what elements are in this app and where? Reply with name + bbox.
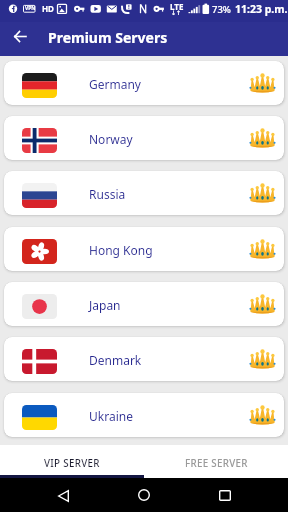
staticText: Hong Kong (89, 242, 153, 258)
button[interactable]: Recent apps (208, 478, 242, 512)
button[interactable]: Germany (4, 61, 284, 105)
staticText: Norway (89, 131, 133, 147)
staticText: LTE (170, 1, 184, 12)
button[interactable]: Navigate up (4, 21, 35, 52)
staticText: FREE SERVER (185, 457, 248, 470)
button[interactable]: Back (46, 479, 80, 512)
staticText: HD (42, 3, 54, 14)
staticText: Ukraine (89, 408, 133, 424)
staticText: VPN (25, 5, 36, 12)
button[interactable]: Ukraine (4, 393, 284, 437)
button[interactable]: Norway (4, 116, 284, 160)
staticText: Premium Servers (48, 28, 168, 47)
button[interactable]: VIP SERVER (0, 445, 144, 478)
button[interactable]: Denmark (4, 337, 284, 381)
staticText: Russia (89, 186, 126, 202)
staticText: ↓↑ (171, 9, 182, 16)
staticText: Denmark (89, 352, 142, 368)
button[interactable]: Hong Kong (4, 227, 284, 271)
staticText: Japan (89, 297, 121, 313)
staticText: Germany (89, 76, 141, 92)
button[interactable]: Home (127, 478, 161, 512)
button[interactable]: Russia (4, 171, 284, 215)
staticText: 11:23 p.m. (235, 2, 288, 16)
staticText: 73% (212, 3, 231, 16)
staticText: VIP SERVER (44, 457, 100, 470)
button[interactable]: Japan (4, 282, 284, 326)
button[interactable]: FREE SERVER (144, 445, 288, 478)
